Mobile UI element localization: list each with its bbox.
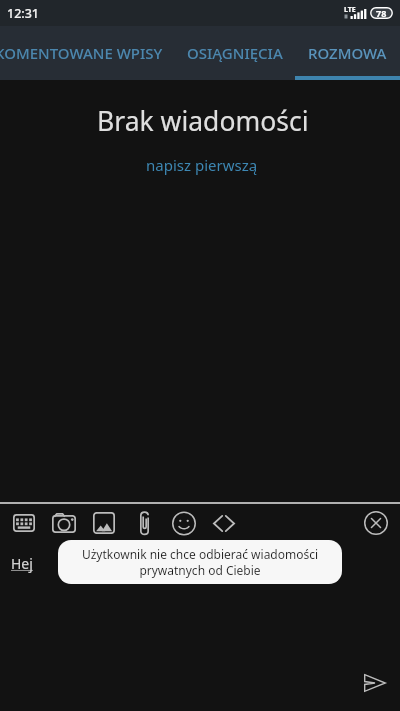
staticText: 12:31 [7, 5, 40, 22]
button[interactable]: KOMENTOWANE WPISY [0, 26, 177, 80]
button[interactable]: Camera [45, 504, 83, 542]
button[interactable]: Emoji [165, 504, 203, 542]
staticText: OSIĄGNIĘCIA [187, 43, 283, 63]
staticText: LTE [344, 5, 356, 15]
button[interactable]: Keyboard [5, 504, 43, 542]
staticText: KOMENTOWANE WPISY [0, 43, 163, 63]
button[interactable]: OSIĄGNIĘCIA [162, 26, 308, 80]
button[interactable]: Send [356, 664, 394, 702]
button[interactable]: ROZMOWA [295, 26, 400, 80]
staticText: Brak wiadomości [97, 103, 309, 139]
button[interactable]: Attach file [125, 504, 163, 542]
button[interactable]: Gallery [85, 504, 123, 542]
button[interactable]: napisz pierwszą [146, 155, 258, 175]
button[interactable]: Close [357, 504, 395, 542]
button[interactable]: Markdown [205, 504, 243, 542]
staticText: 78 [376, 7, 387, 19]
button[interactable]: Hej [11, 554, 33, 573]
staticText: ROZMOWA [308, 43, 387, 63]
staticText: Użytkownik nie chce odbierać wiadomości … [58, 546, 342, 578]
